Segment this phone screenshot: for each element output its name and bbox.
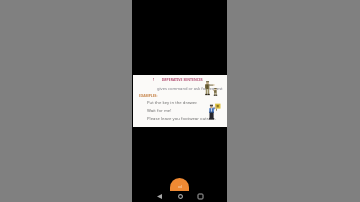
- staticText: IMPERATIVE SENTENCES: [162, 77, 203, 82]
- staticText: Please leave you footwear outside.: [147, 115, 217, 121]
- button[interactable]: Back: [153, 190, 165, 202]
- staticText: !: [153, 77, 155, 83]
- button[interactable]: Recent apps: [194, 190, 206, 202]
- staticText: gives command or ask for request: [157, 86, 223, 92]
- staticText: Wait for me!: [147, 107, 172, 113]
- button[interactable]: Home: [174, 190, 186, 202]
- staticText: EXAMPLES:: [139, 93, 158, 98]
- button[interactable]: Play: [170, 178, 189, 191]
- staticText: Put the key in the drawer.: [147, 99, 198, 105]
- staticText: ad: [178, 185, 182, 189]
